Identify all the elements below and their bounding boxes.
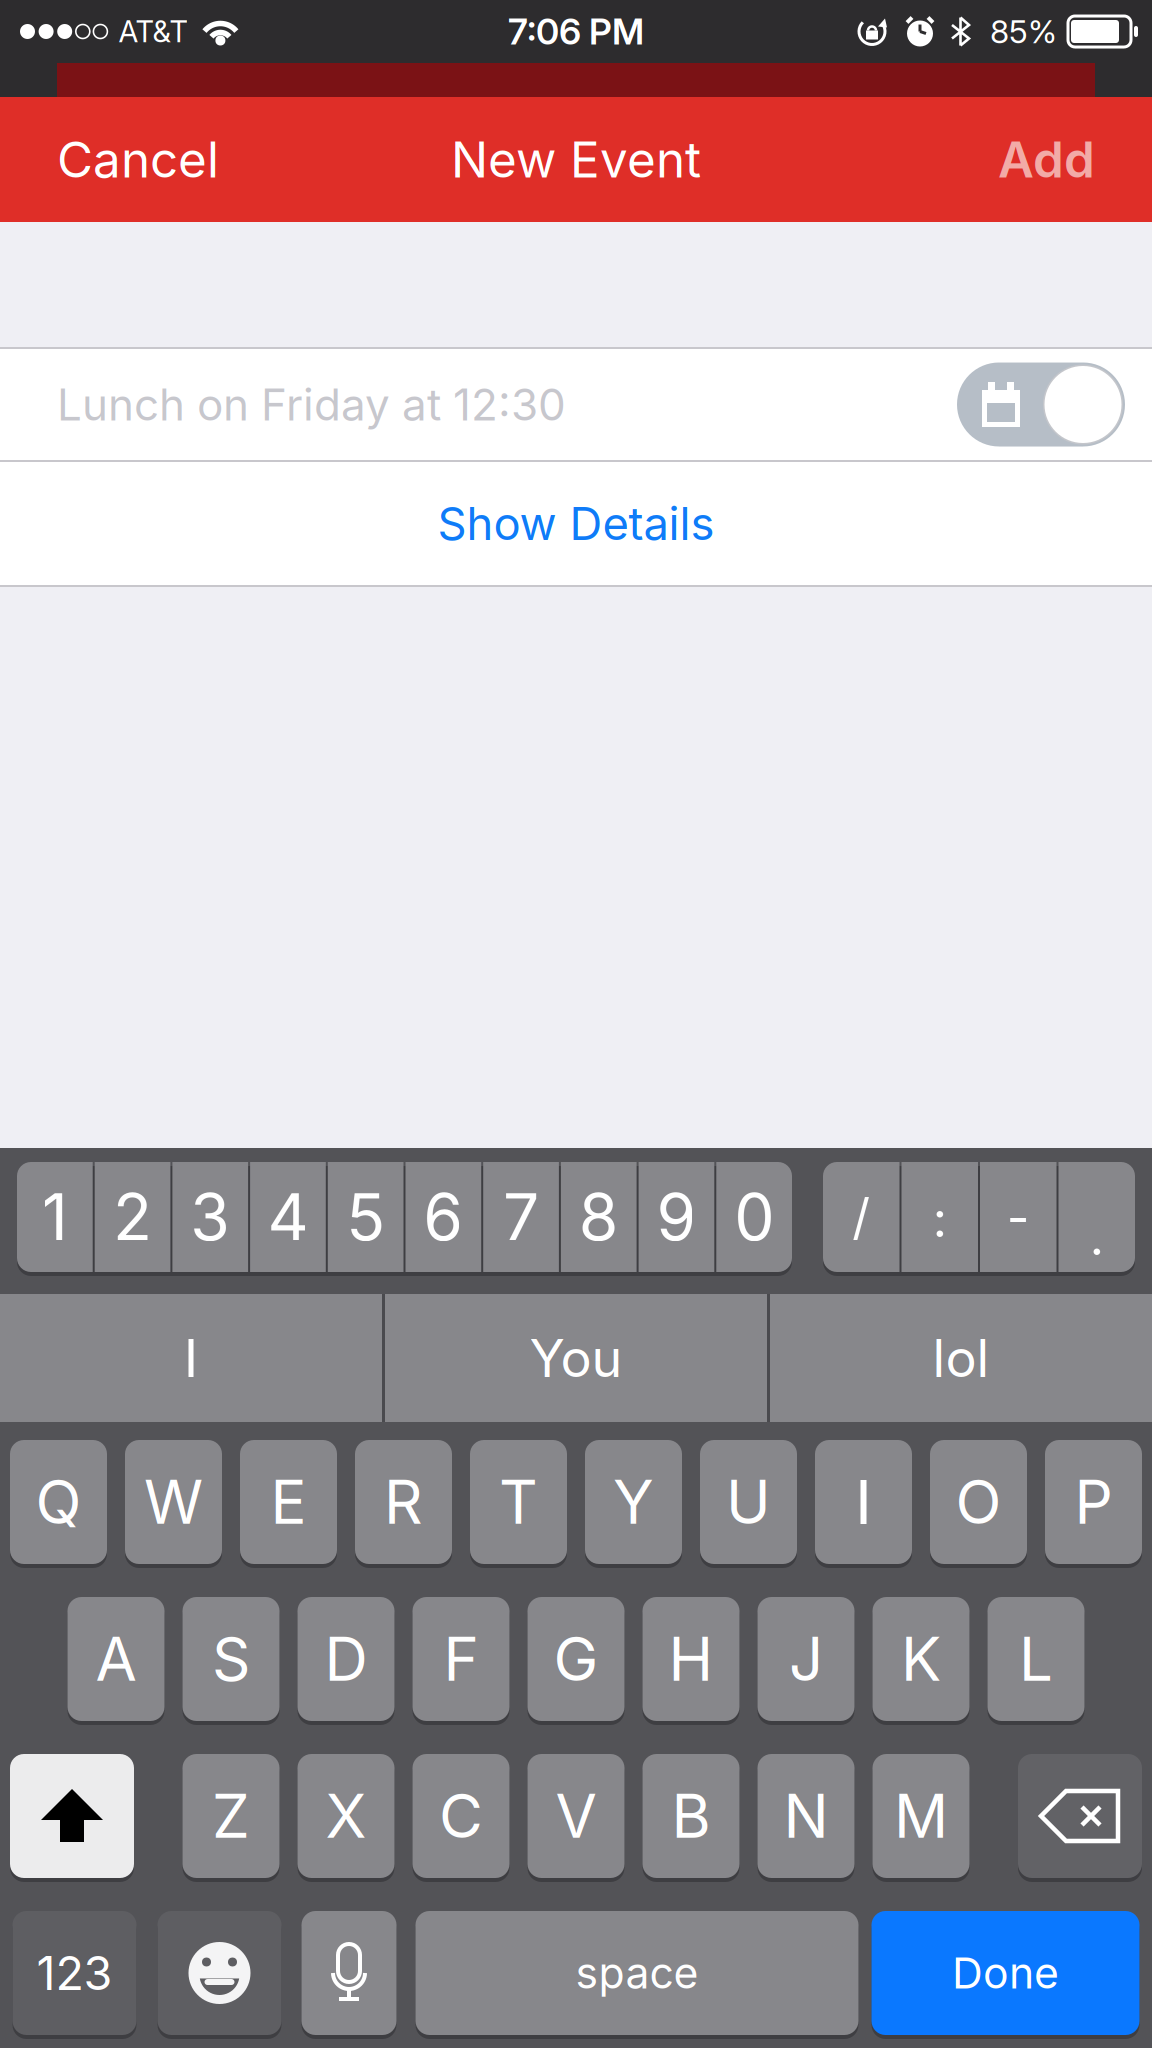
button[interactable]: Delete xyxy=(1018,1754,1142,1878)
staticText: X xyxy=(325,1781,366,1851)
button[interactable]: 3 xyxy=(172,1162,248,1272)
button[interactable]: 6 xyxy=(405,1162,481,1272)
button[interactable]: : xyxy=(901,1162,978,1272)
button[interactable]: 7 xyxy=(483,1162,559,1272)
staticText: 7 xyxy=(503,1179,539,1255)
button[interactable]: P xyxy=(1045,1440,1142,1564)
staticText: O xyxy=(955,1467,1001,1537)
button[interactable]: G xyxy=(527,1597,624,1721)
button[interactable]: 123 xyxy=(12,1911,136,2035)
button[interactable]: K xyxy=(872,1597,969,1721)
button[interactable]: E xyxy=(240,1440,337,1564)
staticText: R xyxy=(384,1467,423,1537)
button[interactable]: M xyxy=(872,1754,969,1878)
staticText: V xyxy=(555,1781,596,1851)
staticText: 7:06 PM xyxy=(508,10,644,53)
button[interactable]: Calendar event xyxy=(957,362,1125,446)
staticText: You xyxy=(529,1327,622,1389)
button[interactable]: Dictation xyxy=(301,1911,396,2035)
staticText: 85% xyxy=(990,13,1057,50)
staticText: 4 xyxy=(267,1179,308,1255)
button[interactable]: 9 xyxy=(639,1162,714,1272)
button[interactable]: H xyxy=(642,1597,739,1721)
staticText: C xyxy=(439,1781,483,1851)
staticText: T xyxy=(499,1467,538,1537)
staticText: Y xyxy=(613,1467,654,1537)
staticText: lol xyxy=(932,1327,989,1389)
button[interactable]: L xyxy=(987,1597,1084,1721)
staticText: 1 xyxy=(42,1179,68,1255)
staticText: / xyxy=(852,1188,870,1246)
button[interactable]: lol xyxy=(770,1294,1152,1422)
staticText: Lunch on Friday at 12:30 xyxy=(57,378,566,430)
button[interactable]: U xyxy=(700,1440,797,1564)
button[interactable]: Add xyxy=(998,130,1095,189)
staticText: : xyxy=(933,1190,947,1248)
button[interactable]: Shift xyxy=(10,1754,134,1878)
button[interactable]: J xyxy=(757,1597,854,1721)
staticText: Cancel xyxy=(57,130,219,189)
staticText: A xyxy=(95,1624,136,1694)
button[interactable]: Q xyxy=(10,1440,107,1564)
staticText: S xyxy=(212,1624,250,1694)
staticText: 8 xyxy=(579,1179,619,1255)
button[interactable]: V xyxy=(527,1754,624,1878)
staticText: M xyxy=(894,1781,948,1851)
staticText: 3 xyxy=(190,1179,230,1255)
button[interactable]: 0 xyxy=(716,1162,792,1272)
staticText: - xyxy=(1007,1188,1030,1246)
button[interactable]: O xyxy=(930,1440,1027,1564)
staticText: 9 xyxy=(656,1179,696,1255)
button[interactable]: space xyxy=(415,1911,858,2035)
staticText: U xyxy=(726,1467,771,1537)
button[interactable]: 1 xyxy=(17,1162,93,1272)
staticText: Z xyxy=(212,1781,250,1851)
staticText: . xyxy=(1090,1208,1104,1266)
button[interactable]: 2 xyxy=(95,1162,170,1272)
button[interactable]: F xyxy=(412,1597,509,1721)
staticText: New Event xyxy=(451,130,701,189)
button[interactable]: Done xyxy=(871,1911,1139,2035)
staticText: Q xyxy=(35,1467,81,1537)
button[interactable]: 8 xyxy=(561,1162,637,1272)
button[interactable]: You xyxy=(385,1294,767,1422)
button[interactable]: Emoji xyxy=(157,1911,281,2035)
button[interactable]: Show Details xyxy=(0,462,1152,585)
button[interactable]: A xyxy=(67,1597,164,1721)
staticText: L xyxy=(1019,1624,1053,1694)
button[interactable]: D xyxy=(297,1597,394,1721)
button[interactable]: 4 xyxy=(250,1162,326,1272)
staticText: K xyxy=(901,1624,941,1694)
button[interactable]: - xyxy=(980,1162,1056,1272)
button[interactable]: Z xyxy=(182,1754,279,1878)
button[interactable]: B xyxy=(642,1754,739,1878)
button[interactable]: R xyxy=(355,1440,452,1564)
staticText: Done xyxy=(952,1948,1059,1998)
staticText: Show Details xyxy=(437,497,714,550)
button[interactable]: . xyxy=(1058,1162,1135,1272)
staticText: 2 xyxy=(113,1179,152,1255)
button[interactable]: Cancel xyxy=(57,130,219,189)
staticText: 6 xyxy=(423,1179,463,1255)
button[interactable]: N xyxy=(757,1754,854,1878)
button[interactable]: I xyxy=(815,1440,912,1564)
staticText: Add xyxy=(998,130,1095,189)
button[interactable]: X xyxy=(297,1754,394,1878)
button[interactable]: 5 xyxy=(328,1162,403,1272)
button[interactable]: I xyxy=(0,1294,382,1422)
staticText: D xyxy=(324,1624,367,1694)
button[interactable]: C xyxy=(412,1754,509,1878)
staticText: P xyxy=(1074,1467,1112,1537)
staticText: J xyxy=(789,1624,823,1694)
staticText: H xyxy=(668,1624,713,1694)
staticText: B xyxy=(671,1781,710,1851)
button[interactable]: T xyxy=(470,1440,567,1564)
button[interactable]: Y xyxy=(585,1440,682,1564)
staticText: 0 xyxy=(734,1179,774,1255)
staticText: 5 xyxy=(346,1179,385,1255)
staticText: F xyxy=(443,1624,478,1694)
button[interactable]: / xyxy=(823,1162,899,1272)
button[interactable]: W xyxy=(125,1440,222,1564)
staticText: G xyxy=(553,1624,598,1694)
button[interactable]: S xyxy=(182,1597,279,1721)
